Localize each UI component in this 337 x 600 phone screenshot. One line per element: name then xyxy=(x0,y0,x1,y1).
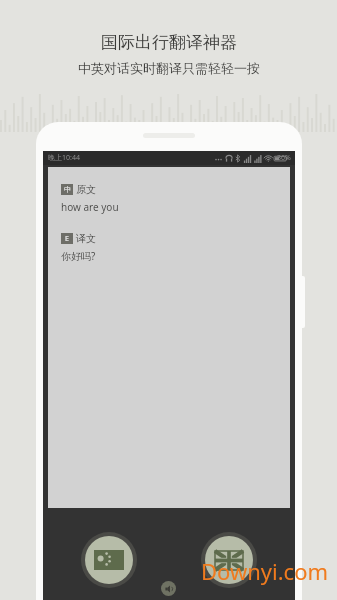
button[interactable]: Mute xyxy=(161,581,176,596)
staticText: how are you xyxy=(61,200,119,214)
staticText: 译文 xyxy=(76,232,96,245)
staticText: Downyi.com xyxy=(201,556,329,586)
staticText: 36% xyxy=(277,153,291,163)
staticText: 晚上10:44 xyxy=(48,153,80,163)
button[interactable]: 中 xyxy=(48,167,290,508)
staticText: 中 xyxy=(64,185,71,194)
staticText: 国际出行翻译神器 xyxy=(101,32,237,53)
staticText: 中英对话实时翻译只需轻轻一按 xyxy=(78,60,260,76)
staticText: E xyxy=(65,234,69,244)
button[interactable]: English xyxy=(205,536,253,584)
staticText: 你好吗? xyxy=(61,249,96,263)
button[interactable]: Chinese xyxy=(85,536,133,584)
staticText: 原文 xyxy=(76,183,96,196)
